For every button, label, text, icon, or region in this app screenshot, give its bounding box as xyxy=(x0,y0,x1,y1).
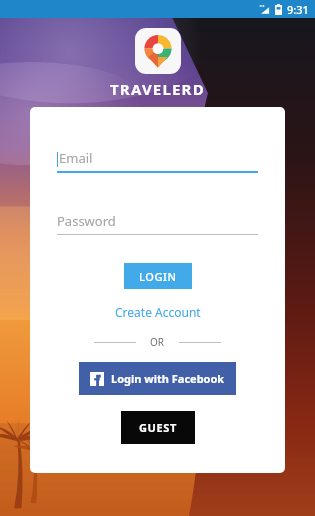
staticText: Email xyxy=(59,149,93,167)
button[interactable]: LOGIN xyxy=(124,263,192,289)
button[interactable]: GUEST xyxy=(121,411,195,444)
button[interactable]: Create Account xyxy=(109,302,207,322)
staticText: OR xyxy=(150,335,165,349)
staticText: LOGIN xyxy=(139,269,177,284)
staticText: GUEST xyxy=(139,420,177,435)
staticText: Login with Facebook xyxy=(111,371,225,386)
staticText: 9:31 xyxy=(287,2,309,17)
staticText: TRAVELERD xyxy=(110,79,205,99)
button[interactable]: Password xyxy=(57,212,258,235)
staticText: Create Account xyxy=(115,304,201,320)
staticText: Password xyxy=(57,212,116,230)
button[interactable]: Email xyxy=(57,149,258,173)
button[interactable]: Login with Facebook xyxy=(79,362,236,395)
